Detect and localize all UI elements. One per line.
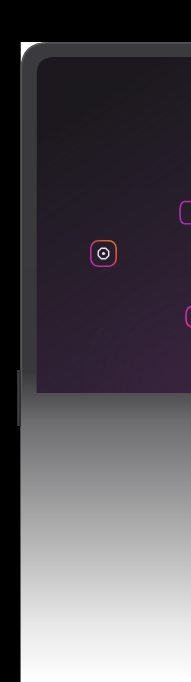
button[interactable]: App: [180, 200, 191, 225]
button[interactable]: Camera app: [89, 239, 118, 268]
button[interactable]: App: [186, 305, 191, 328]
